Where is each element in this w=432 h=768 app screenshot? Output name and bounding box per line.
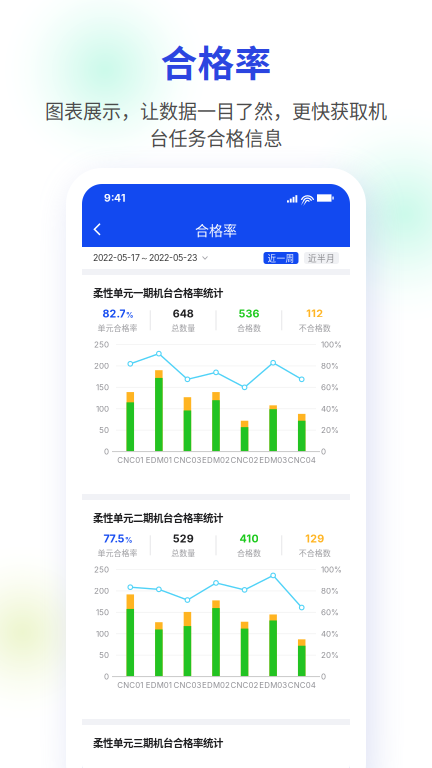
- staticText: 250: [94, 565, 109, 574]
- staticText: 50: [99, 650, 109, 660]
- staticText: %: [125, 536, 132, 544]
- staticText: 0: [104, 447, 109, 456]
- staticText: EDM03: [259, 455, 287, 465]
- staticText: CNC01: [117, 455, 143, 465]
- staticText: %: [126, 311, 133, 319]
- staticText: 150: [96, 382, 109, 392]
- staticText: 80%: [321, 361, 339, 371]
- staticText: 20%: [321, 425, 339, 435]
- staticText: 100%: [321, 340, 342, 349]
- staticText: 60%: [321, 382, 339, 392]
- staticText: 100%: [321, 565, 342, 574]
- staticText: 合格率: [195, 219, 237, 240]
- staticText: 50: [99, 425, 109, 435]
- staticText: 0: [104, 672, 109, 681]
- staticText: EDM02: [202, 680, 230, 690]
- button[interactable]: Back: [82, 214, 113, 244]
- staticText: CNC04: [288, 455, 316, 465]
- button[interactable]: 近一周: [263, 252, 298, 264]
- staticText: EDM01: [146, 680, 172, 690]
- staticText: 150: [96, 607, 109, 617]
- staticText: 77.5: [103, 532, 124, 545]
- staticText: 60%: [321, 607, 339, 617]
- staticText: 总数量: [171, 322, 195, 334]
- staticText: 合格数: [237, 547, 261, 559]
- staticText: 近一周: [267, 252, 294, 264]
- staticText: CNC03: [173, 455, 201, 465]
- staticText: 200: [94, 361, 109, 371]
- staticText: 529: [173, 532, 194, 545]
- staticText: 总数量: [171, 547, 195, 559]
- staticText: CNC02: [231, 680, 259, 690]
- staticText: 80%: [321, 586, 339, 596]
- staticText: 台任务合格信息: [149, 124, 282, 151]
- staticText: CNC04: [288, 680, 316, 690]
- staticText: 20%: [321, 650, 339, 660]
- staticText: 200: [94, 586, 109, 596]
- staticText: 100: [96, 404, 109, 414]
- staticText: 不合格数: [299, 547, 331, 559]
- staticText: 不合格数: [299, 322, 331, 334]
- staticText: 柔性单元三期机台合格率统计: [93, 735, 223, 750]
- button[interactable]: 2022-05-17～2022-05-23: [93, 252, 208, 263]
- staticText: 112: [306, 307, 323, 320]
- staticText: 250: [94, 340, 109, 349]
- staticText: CNC01: [117, 680, 143, 690]
- staticText: 单元合格率: [97, 547, 137, 559]
- staticText: 合格数: [237, 322, 261, 334]
- staticText: 合格率: [160, 34, 271, 88]
- staticText: 单元合格率: [97, 322, 137, 334]
- staticText: EDM01: [146, 455, 172, 465]
- staticText: 40%: [321, 629, 339, 639]
- staticText: 0: [321, 447, 326, 456]
- staticText: 近半月: [308, 252, 335, 264]
- button[interactable]: 近半月: [304, 252, 339, 264]
- staticText: CNC02: [231, 455, 259, 465]
- staticText: 82.7: [102, 307, 125, 320]
- staticText: 2022-05-17～2022-05-23: [93, 252, 197, 263]
- staticText: 410: [239, 532, 258, 545]
- staticText: 100: [96, 629, 109, 639]
- staticText: 648: [173, 307, 194, 320]
- staticText: 图表展示，让数据一目了然，更快获取机: [45, 97, 387, 124]
- staticText: 柔性单元二期机台合格率统计: [93, 510, 223, 525]
- staticText: EDM02: [202, 455, 230, 465]
- staticText: 40%: [321, 404, 339, 414]
- staticText: 9:41: [104, 192, 125, 204]
- staticText: CNC03: [173, 680, 201, 690]
- staticText: 柔性单元一期机台合格率统计: [93, 285, 223, 300]
- staticText: 0: [321, 672, 326, 681]
- staticText: EDM03: [259, 680, 287, 690]
- staticText: 536: [238, 307, 259, 320]
- staticText: 129: [305, 532, 324, 545]
